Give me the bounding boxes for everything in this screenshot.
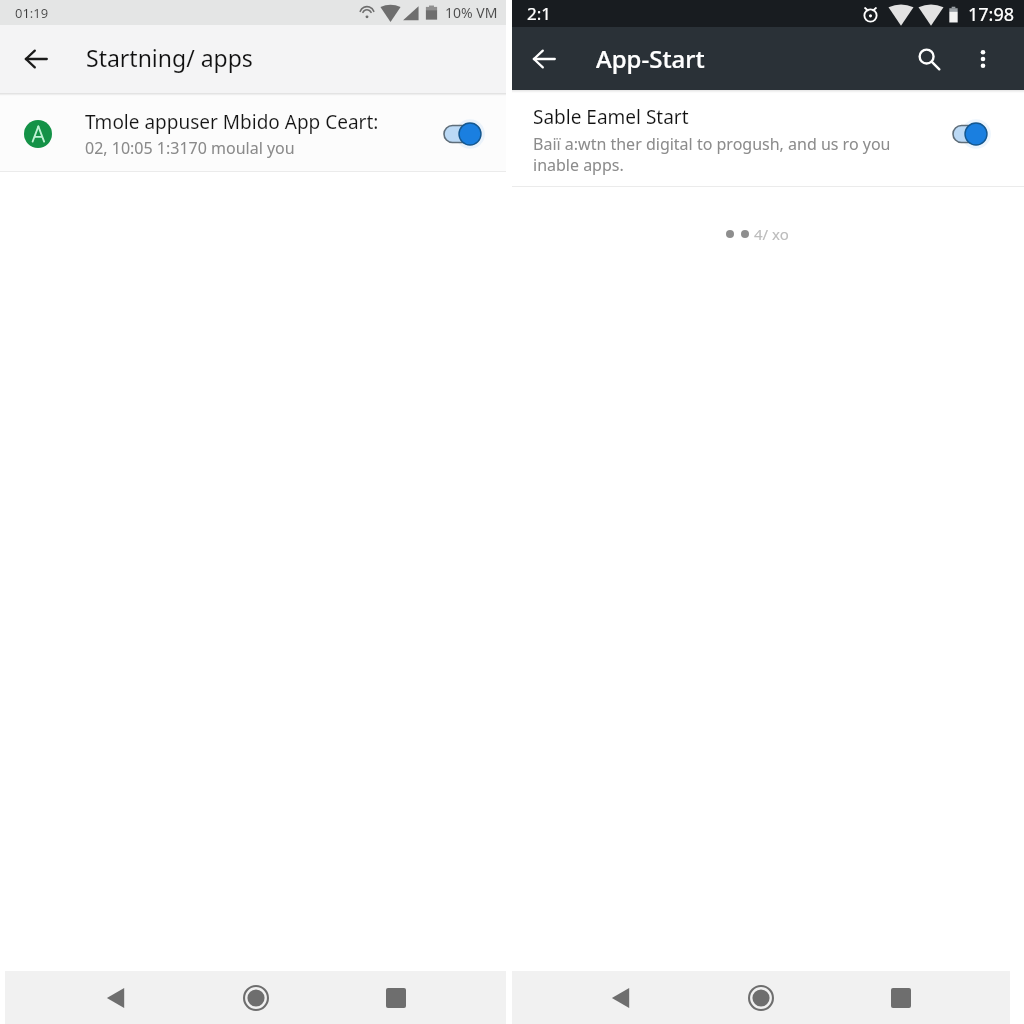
staticText: 01:19: [15, 4, 49, 22]
button[interactable]: Toggle autostart: [436, 106, 506, 162]
staticText: 2:1: [527, 2, 552, 25]
staticText: 17:98: [968, 2, 1015, 27]
button[interactable]: Toggle autostart: [946, 90, 1024, 164]
staticText: Tmole appuser Mbido App Ceart:: [85, 109, 379, 135]
staticText: App-Start: [596, 42, 705, 75]
staticText: 10% VM: [445, 3, 498, 22]
staticText: 4/ xo: [754, 224, 789, 244]
staticText: 02, 10:05 1:3170 moulal you: [85, 137, 295, 159]
button[interactable]: Back: [14, 37, 58, 81]
button[interactable]: Search: [905, 35, 953, 83]
button[interactable]: Back: [522, 37, 566, 81]
button[interactable]: Home: [232, 974, 280, 1022]
button[interactable]: Sable Eamel Start: [512, 90, 1024, 187]
staticText: Startning/ apps: [86, 42, 253, 73]
button[interactable]: Back: [597, 974, 645, 1022]
button[interactable]: Tmole appuser Mbido App Ceart:: [0, 96, 506, 171]
button[interactable]: Home: [737, 974, 785, 1022]
button[interactable]: Recents: [877, 974, 925, 1022]
button[interactable]: Back: [92, 974, 140, 1022]
button[interactable]: More options: [959, 35, 1007, 83]
button[interactable]: Recents: [372, 974, 420, 1022]
staticText: Baiï a:wtn ther digital to progush, and …: [533, 133, 891, 176]
staticText: Sable Eamel Start: [533, 104, 689, 130]
